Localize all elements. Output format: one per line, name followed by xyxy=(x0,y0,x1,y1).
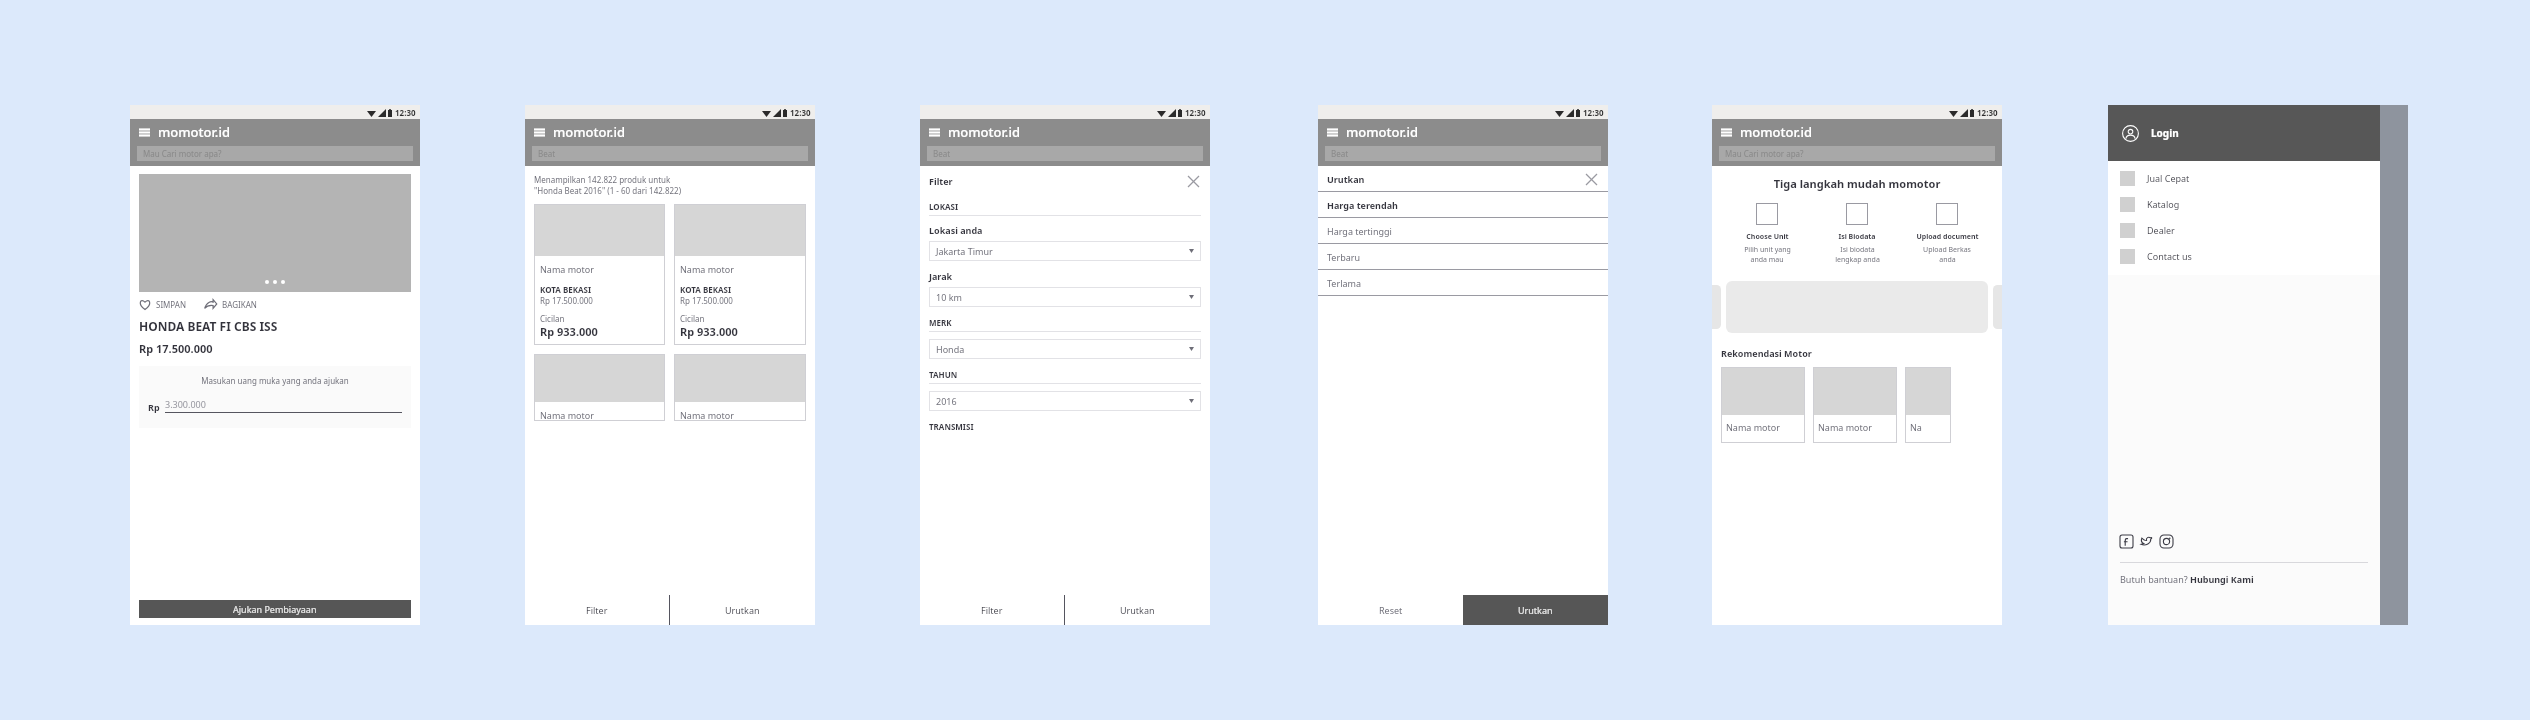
staticText: Nama motor xyxy=(540,409,594,421)
button[interactable]: Menu xyxy=(137,125,151,139)
staticText: Choose Unit xyxy=(1746,232,1789,242)
button[interactable]: Katalog xyxy=(2120,191,2380,217)
button[interactable]: Instagram xyxy=(2160,535,2173,548)
button[interactable]: 10 km xyxy=(929,287,1201,307)
button[interactable]: Jual Cepat xyxy=(2120,165,2380,191)
button[interactable]: Menu xyxy=(927,125,941,139)
staticText: Cicilan xyxy=(540,313,565,324)
button[interactable]: Login xyxy=(2122,105,2380,161)
button[interactable]: Dealer xyxy=(2120,217,2380,243)
staticText: Tiga langkah mudah momotor xyxy=(1712,176,2002,191)
staticText: momotor.id xyxy=(948,123,1020,141)
staticText: Login xyxy=(2151,126,2179,140)
button[interactable]: SIMPAN xyxy=(139,299,186,310)
button[interactable]: Ajukan Pembiayaan xyxy=(139,600,411,618)
staticText: SIMPAN xyxy=(156,299,186,310)
button[interactable]: Upload document xyxy=(1902,203,1992,265)
button[interactable]: Mau Cari motor apa? xyxy=(137,146,413,161)
staticText: Filter xyxy=(586,604,608,616)
staticText: Dealer xyxy=(2147,224,2175,236)
button[interactable]: Nama motor xyxy=(674,204,806,345)
button[interactable]: Jakarta Timur xyxy=(929,241,1201,261)
staticText: Beat xyxy=(538,148,556,159)
staticText: Menampilkan 142.822 produk untuk xyxy=(534,174,671,185)
button[interactable]: BAGIKAN xyxy=(204,299,257,310)
button[interactable]: Urutkan xyxy=(1065,595,1210,625)
button[interactable]: Reset xyxy=(1318,595,1463,625)
button[interactable]: Twitter xyxy=(2140,535,2153,548)
staticText: "Honda Beat 2016" (1 - 60 dari 142.822) xyxy=(534,185,682,196)
button[interactable]: Menu xyxy=(1719,125,1733,139)
staticText: Nama motor xyxy=(540,263,594,275)
button[interactable]: Nama motor xyxy=(534,204,665,345)
staticText: Rp 933.000 xyxy=(540,324,598,339)
button[interactable]: Filter xyxy=(525,595,669,625)
staticText: Filter xyxy=(981,604,1003,616)
staticText: HONDA BEAT FI CBS ISS xyxy=(139,318,278,334)
staticText: MERK xyxy=(929,317,952,328)
staticText: Jarak xyxy=(929,270,953,282)
button[interactable]: Harga tertinggi xyxy=(1327,218,1599,243)
staticText: KOTA BEKASI xyxy=(540,284,592,295)
staticText: anda mau xyxy=(1750,255,1784,265)
button[interactable]: Urutkan xyxy=(670,595,815,625)
button[interactable]: Mau Cari motor apa? xyxy=(1719,146,1995,161)
staticText: Rekomendasi Motor xyxy=(1721,347,1812,359)
staticText: lengkap anda xyxy=(1835,255,1880,265)
button[interactable]: Honda xyxy=(929,339,1201,359)
staticText: Honda xyxy=(936,343,965,355)
staticText: momotor.id xyxy=(1346,123,1418,141)
button[interactable]: 2016 xyxy=(929,391,1201,411)
staticText: LOKASI xyxy=(929,201,959,212)
button[interactable]: Menu xyxy=(1325,125,1339,139)
button[interactable]: Nama motor xyxy=(1813,367,1897,443)
staticText: Urutkan xyxy=(1518,604,1553,616)
staticText: Beat xyxy=(1331,148,1349,159)
staticText: Rp 17.500.000 xyxy=(680,295,733,306)
staticText: Nama motor xyxy=(680,409,734,421)
staticText: Jual Cepat xyxy=(2147,172,2190,184)
button[interactable]: Harga terendah xyxy=(1327,192,1599,217)
staticText: 3.300.000 xyxy=(165,398,206,410)
staticText: Na xyxy=(1910,421,1922,433)
staticText: Upload document xyxy=(1916,232,1979,242)
staticText: Mau Cari motor apa? xyxy=(1725,148,1804,159)
button[interactable]: Terbaru xyxy=(1327,244,1599,269)
button[interactable]: Urutkan xyxy=(1463,595,1608,625)
button[interactable]: Nama motor xyxy=(674,354,806,421)
button[interactable]: Terlama xyxy=(1327,270,1599,295)
button[interactable]: Close xyxy=(1583,171,1599,187)
button[interactable]: Nama motor xyxy=(534,354,665,421)
button[interactable]: Isi Biodata xyxy=(1812,203,1902,265)
button[interactable]: Contact us xyxy=(2120,243,2380,269)
staticText: Nama motor xyxy=(1726,421,1780,433)
staticText: momotor.id xyxy=(158,123,230,141)
staticText: TRANSMISI xyxy=(929,421,974,432)
staticText: Urutkan xyxy=(1327,173,1365,185)
staticText: KOTA BEKASI xyxy=(680,284,732,295)
staticText: Hubungi Kami xyxy=(2190,573,2254,585)
button[interactable]: Close xyxy=(1185,173,1201,189)
button[interactable]: Na xyxy=(1905,367,1951,443)
staticText: Terbaru xyxy=(1327,251,1361,263)
button[interactable]: Butuh bantuan? xyxy=(2120,573,2254,585)
button[interactable]: Choose Unit xyxy=(1722,203,1812,265)
staticText: 2016 xyxy=(936,395,957,407)
staticText: 12:30 xyxy=(790,107,811,118)
button[interactable]: Filter xyxy=(920,595,1064,625)
staticText: 12:30 xyxy=(1583,107,1604,118)
button[interactable]: Nama motor xyxy=(1721,367,1805,443)
staticText: Reset xyxy=(1379,604,1403,616)
button[interactable]: Menu xyxy=(532,125,546,139)
staticText: Isi biodata xyxy=(1840,245,1875,255)
staticText: Jakarta Timur xyxy=(936,245,993,257)
staticText: Harga terendah xyxy=(1327,199,1398,211)
staticText: 12:30 xyxy=(1977,107,1998,118)
staticText: Masukan uang muka yang anda ajukan xyxy=(148,375,402,386)
staticText: Terlama xyxy=(1327,277,1362,289)
button[interactable]: Facebook xyxy=(2120,535,2133,548)
